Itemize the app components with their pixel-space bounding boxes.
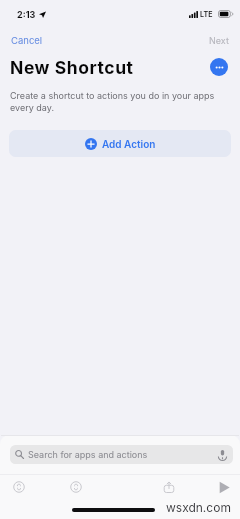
- staticText: Add Action: [102, 138, 156, 150]
- button[interactable]: Add Action: [9, 130, 231, 157]
- staticText: New Shortcut: [10, 57, 134, 78]
- staticText: Next: [209, 35, 229, 46]
- button[interactable]: Share: [155, 475, 183, 499]
- button[interactable]: More options: [210, 58, 228, 76]
- staticText: LTE: [200, 10, 213, 18]
- staticText: Cancel: [11, 35, 43, 46]
- staticText: 2:13: [17, 9, 36, 20]
- button[interactable]: Cancel: [6, 31, 48, 50]
- button[interactable]: Dictate: [217, 449, 228, 460]
- staticText: wsxdn.com: [166, 500, 231, 515]
- button[interactable]: Run: [210, 475, 238, 499]
- button[interactable]: Search for apps and actions: [10, 445, 233, 464]
- staticText: Create a shortcut to actions you do in y…: [10, 90, 231, 113]
- button[interactable]: Undo: [5, 475, 33, 499]
- staticText: Search for apps and actions: [28, 449, 148, 460]
- button[interactable]: Next: [204, 31, 234, 50]
- button[interactable]: Redo: [62, 475, 90, 499]
